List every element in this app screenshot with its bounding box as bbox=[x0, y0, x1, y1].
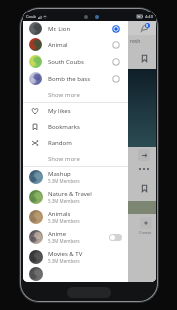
staticText: 5.3M Members bbox=[48, 198, 80, 204]
staticText: 5.3M Members bbox=[48, 238, 80, 244]
staticText: Show more bbox=[48, 155, 80, 163]
staticText: 5.3M Members bbox=[48, 258, 80, 264]
staticText: 5.3M Members bbox=[48, 178, 80, 184]
staticText: Anime bbox=[48, 230, 67, 238]
staticText: Mashup bbox=[48, 170, 71, 178]
button[interactable]: Show more bbox=[23, 151, 128, 166]
staticText: Bomb the bass bbox=[48, 75, 112, 83]
staticText: Coub bbox=[26, 14, 36, 19]
staticText: My likes bbox=[48, 107, 71, 115]
staticText: Create bbox=[139, 230, 152, 235]
button[interactable]: Mr. Lion bbox=[23, 21, 128, 36]
button[interactable]: Animal bbox=[23, 36, 128, 53]
staticText: Movies & TV bbox=[48, 250, 83, 258]
button[interactable]: Bomb the bass bbox=[23, 70, 128, 87]
staticText: 4:40 bbox=[145, 14, 153, 19]
staticText: resh bbox=[130, 38, 141, 45]
staticText: Random bbox=[48, 139, 72, 147]
button[interactable]: Random bbox=[23, 135, 128, 151]
staticText: Animal bbox=[48, 41, 112, 49]
staticText: Show more bbox=[48, 91, 80, 99]
button[interactable]: resh bbox=[23, 35, 156, 47]
button[interactable]: Save bbox=[140, 184, 149, 193]
staticText: 0 bbox=[146, 23, 149, 28]
button[interactable]: More options bbox=[137, 166, 151, 172]
button[interactable]: Show more bbox=[23, 87, 128, 102]
button[interactable]: Movies & TV bbox=[23, 247, 128, 267]
button[interactable]: Nature & Travel bbox=[23, 187, 128, 207]
button[interactable]: Share bbox=[138, 149, 150, 161]
button[interactable]: Toggle bbox=[109, 234, 122, 241]
button[interactable]: Home bbox=[67, 287, 111, 298]
button[interactable]: Anime bbox=[23, 227, 128, 247]
staticText: 5.3M Members bbox=[48, 218, 80, 224]
button[interactable]: Bookmarks bbox=[23, 119, 128, 135]
button[interactable]: Notifications bbox=[139, 23, 150, 34]
button[interactable]: South Coubs bbox=[23, 53, 128, 70]
staticText: Animals bbox=[48, 210, 71, 218]
button[interactable]: Create bbox=[139, 217, 152, 235]
staticText: Bookmarks bbox=[48, 123, 80, 131]
button[interactable]: Animals bbox=[23, 207, 128, 227]
button[interactable]: My likes bbox=[23, 103, 128, 119]
staticText: Mr. Lion bbox=[48, 25, 112, 33]
staticText: South Coubs bbox=[48, 58, 112, 66]
button[interactable]: Mashup bbox=[23, 167, 128, 187]
staticText: Nature & Travel bbox=[48, 190, 92, 198]
button[interactable]: Bookmark bbox=[140, 54, 149, 63]
button[interactable] bbox=[23, 267, 128, 282]
